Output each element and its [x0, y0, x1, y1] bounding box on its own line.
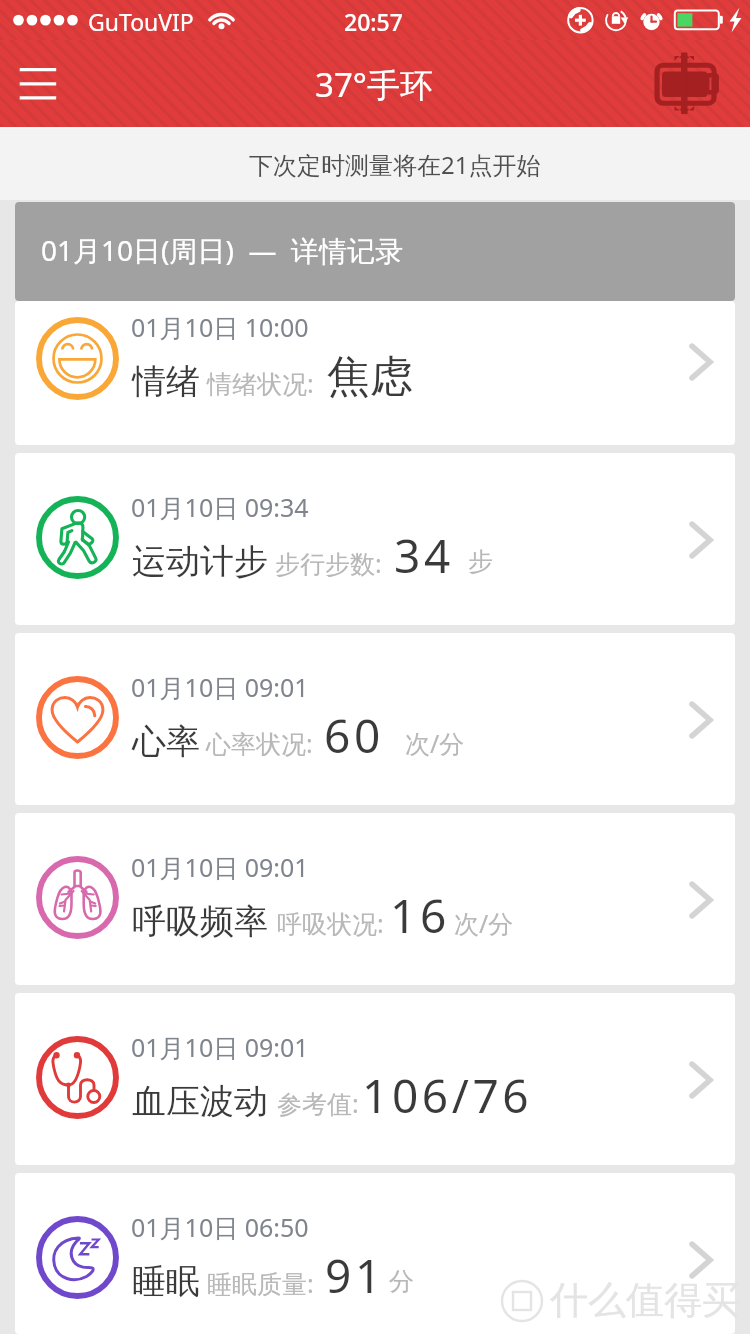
staticText: 什么值得买 [550, 1276, 740, 1324]
button[interactable]: 01月10日(周日) — 详情记录 [15, 202, 735, 301]
staticText: 心率状况: [206, 726, 313, 760]
button[interactable]: Band battery [644, 40, 734, 127]
staticText: 106/76 [362, 1064, 533, 1127]
button[interactable]: Open detail [665, 515, 715, 565]
staticText: 91 [325, 1244, 385, 1307]
staticText: 01月10日 09:01 [131, 850, 309, 884]
button[interactable]: Open detail [665, 695, 715, 745]
staticText: 01月10日 09:01 [131, 670, 309, 704]
staticText: 01月10日 09:01 [131, 1030, 309, 1064]
staticText: 运动计步 [132, 540, 268, 583]
staticText: 步行步数: [275, 546, 382, 580]
staticText: GuTouVIP [88, 6, 194, 37]
staticText: 01月10日(周日) — 详情记录 [41, 231, 403, 269]
staticText: 01月10日 09:34 [131, 490, 309, 524]
staticText: 步 [468, 546, 493, 577]
button[interactable]: 01月10日 10:00 [15, 301, 735, 445]
button[interactable]: Open detail [665, 337, 715, 387]
staticText: 睡眠 [132, 1260, 200, 1303]
staticText: 情绪状况: [207, 366, 314, 400]
staticText: 次/分 [454, 906, 514, 940]
staticText: 16 [390, 884, 450, 947]
staticText: 焦虑 [327, 350, 413, 404]
button[interactable]: 01月10日 09:34 [15, 453, 735, 625]
button[interactable]: Open detail [665, 1055, 715, 1105]
button[interactable]: Open detail [665, 875, 715, 925]
staticText: 次/分 [405, 726, 465, 760]
staticText: 60 [324, 704, 384, 767]
staticText: 01月10日 06:50 [131, 1210, 309, 1244]
staticText: 37°手环 [315, 62, 433, 107]
staticText: 下次定时测量将在21点开始 [249, 148, 541, 181]
button[interactable]: 01月10日 09:01 [15, 633, 735, 805]
staticText: 分 [389, 1266, 414, 1297]
staticText: 心率 [132, 720, 200, 763]
staticText: 血压波动 [132, 1080, 268, 1123]
staticText: 01月10日 10:00 [131, 310, 309, 344]
staticText: 20:57 [344, 6, 403, 37]
staticText: 睡眠质量: [207, 1266, 314, 1300]
staticText: 呼吸状况: [277, 906, 384, 940]
button[interactable]: Menu [0, 40, 76, 127]
staticText: 参考值: [277, 1086, 359, 1120]
button[interactable]: 01月10日 06:50 [15, 1173, 735, 1334]
button[interactable]: 01月10日 09:01 [15, 993, 735, 1165]
staticText: 呼吸频率 [132, 900, 268, 943]
staticText: 34 [394, 524, 454, 587]
button[interactable]: Open detail [665, 1235, 715, 1285]
staticText: 情绪 [132, 360, 200, 403]
button[interactable]: 01月10日 09:01 [15, 813, 735, 985]
